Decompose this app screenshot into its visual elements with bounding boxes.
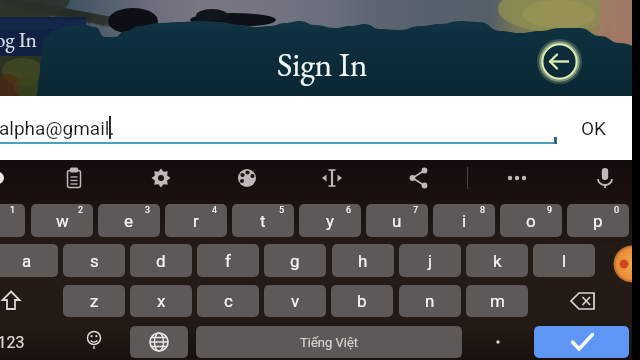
button[interactable]: Clipboard <box>54 158 94 198</box>
button[interactable]: Settings <box>141 158 181 198</box>
staticText: l <box>562 251 567 271</box>
button[interactable]: i <box>433 204 495 237</box>
staticText: OK <box>581 117 606 139</box>
staticText: v <box>291 291 300 311</box>
button[interactable]: Emoji <box>63 326 125 358</box>
staticText: 9 <box>547 205 553 216</box>
button[interactable]: Voice input <box>585 158 625 198</box>
staticText: t <box>260 211 266 231</box>
staticText: r <box>193 211 199 231</box>
button[interactable]: w <box>31 204 93 237</box>
button[interactable]: Back <box>540 42 579 81</box>
button[interactable]: z <box>63 285 125 317</box>
button[interactable]: Enter <box>534 326 629 358</box>
staticText: g <box>290 251 300 271</box>
button[interactable]: h <box>332 244 394 277</box>
staticText: ?123 <box>0 333 25 352</box>
staticText: e <box>124 211 134 231</box>
button[interactable]: Backspace <box>537 285 629 317</box>
staticText: b <box>357 291 367 311</box>
button[interactable]: f <box>197 244 259 277</box>
button[interactable]: e <box>98 204 160 237</box>
staticText: 6 <box>346 205 352 216</box>
staticText: 1 <box>10 205 16 216</box>
button[interactable]: p <box>567 204 629 237</box>
button[interactable]: b <box>331 285 393 317</box>
staticText: f <box>225 251 231 271</box>
staticText: m <box>490 291 505 311</box>
button[interactable]: k <box>466 244 528 277</box>
button[interactable]: c <box>197 285 259 317</box>
button[interactable]: Share <box>399 158 439 198</box>
staticText: s <box>90 251 99 271</box>
staticText: n <box>425 291 435 311</box>
staticText: p <box>593 211 603 231</box>
staticText: Tiếng Việt <box>300 335 359 350</box>
button[interactable]: n <box>399 285 461 317</box>
button[interactable]: q <box>0 204 25 237</box>
staticText: o <box>526 211 536 231</box>
button[interactable]: y <box>299 204 361 237</box>
button[interactable]: Tiếng Việt <box>196 326 462 358</box>
staticText: 7 <box>413 205 419 216</box>
staticText: 8 <box>480 205 486 216</box>
staticText: 4 <box>212 205 218 216</box>
staticText: 2 <box>78 205 84 216</box>
button[interactable]: a <box>0 244 58 277</box>
staticText: alpha@gmail. <box>0 117 115 139</box>
staticText: u <box>392 211 402 231</box>
button[interactable]: t <box>232 204 294 237</box>
button[interactable]: More options <box>497 158 537 198</box>
button[interactable]: Text editing <box>312 158 352 198</box>
button[interactable]: Theme <box>227 158 267 198</box>
button[interactable]: u <box>366 204 428 237</box>
button[interactable]: r <box>165 204 227 237</box>
staticText: 3 <box>145 205 151 216</box>
staticText: h <box>358 251 368 271</box>
staticText: j <box>428 251 433 271</box>
staticText: i <box>462 211 467 231</box>
staticText: a <box>22 251 32 271</box>
staticText: k <box>493 251 502 271</box>
staticText: y <box>326 211 335 231</box>
staticText: 0 <box>614 205 620 216</box>
staticText: z <box>90 291 99 311</box>
button[interactable]: g <box>264 244 326 277</box>
button[interactable]: Shift <box>0 285 57 317</box>
button[interactable]: l <box>533 244 595 277</box>
staticText: x <box>157 291 166 311</box>
button[interactable]: OK <box>568 96 618 160</box>
button[interactable]: v <box>264 285 326 317</box>
staticText: d <box>156 251 166 271</box>
button[interactable]: o <box>500 204 562 237</box>
staticText: 5 <box>279 205 285 216</box>
button[interactable]: Period <box>468 326 528 358</box>
staticText: w <box>56 211 69 231</box>
button[interactable]: m <box>466 285 528 317</box>
staticText: Sign In <box>277 43 368 86</box>
button[interactable]: j <box>399 244 461 277</box>
staticText: c <box>224 291 233 311</box>
staticText: og In <box>0 26 37 53</box>
button[interactable]: ?123 <box>0 326 62 358</box>
button[interactable]: Change language <box>130 326 188 358</box>
button[interactable]: s <box>63 244 125 277</box>
button[interactable]: d <box>130 244 192 277</box>
button[interactable]: x <box>130 285 192 317</box>
